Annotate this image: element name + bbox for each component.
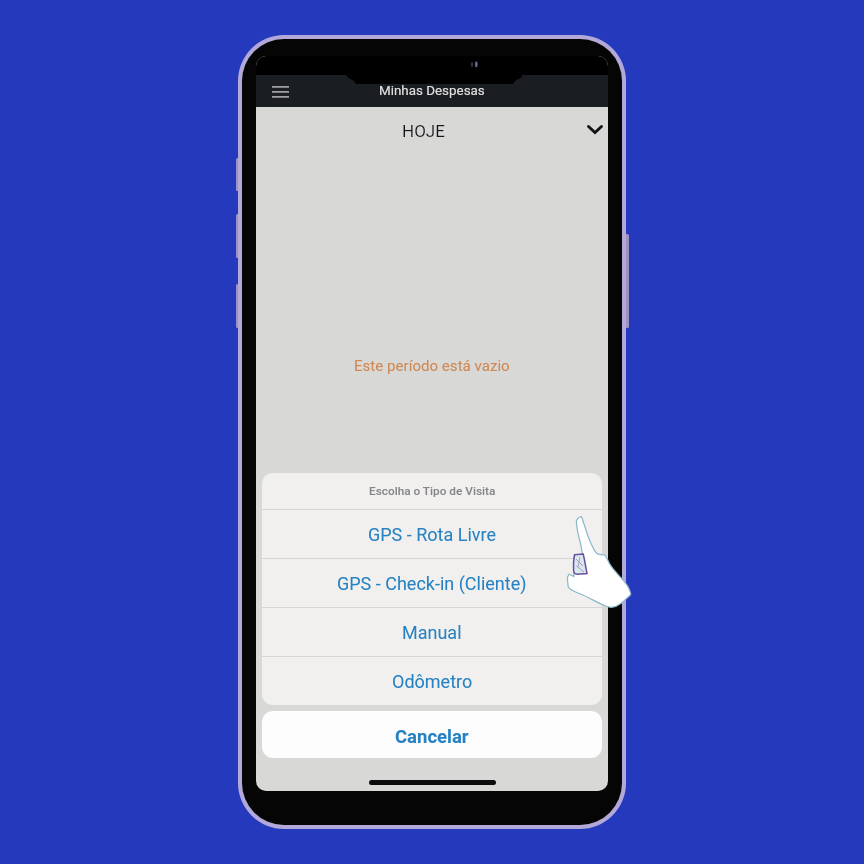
button[interactable]: Menu xyxy=(264,77,296,105)
button[interactable]: GPS - Rota Livre xyxy=(262,510,602,558)
staticText: Manual xyxy=(402,622,462,643)
staticText: HOJE xyxy=(402,121,445,141)
staticText: Escolha o Tipo de Visita xyxy=(369,484,496,498)
staticText: GPS - Check-in (Cliente) xyxy=(337,573,527,594)
staticText: Este período está vazio xyxy=(354,357,510,375)
staticText: Odômetro xyxy=(392,671,473,692)
staticText: Cancelar xyxy=(395,726,469,748)
button[interactable]: Manual xyxy=(262,608,602,656)
button[interactable]: Cancelar xyxy=(262,711,602,758)
staticText: GPS - Rota Livre xyxy=(368,524,496,545)
button[interactable]: Odômetro xyxy=(262,657,602,705)
staticText: Minhas Despesas xyxy=(379,83,485,99)
button[interactable]: Expand period xyxy=(582,118,608,144)
button[interactable]: GPS - Check-in (Cliente) xyxy=(262,559,602,607)
